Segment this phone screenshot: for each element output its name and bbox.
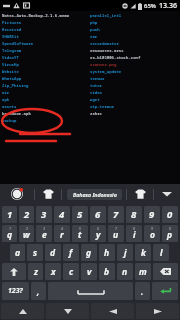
staticText: w xyxy=(23,229,30,241)
button[interactable]: Right xyxy=(136,303,179,319)
button[interactable]: 2 xyxy=(19,206,34,223)
button[interactable]: 7 xyxy=(108,206,124,223)
button[interactable]: h xyxy=(99,244,115,261)
staticText: v xyxy=(87,266,92,278)
button[interactable]: l xyxy=(153,244,169,261)
button[interactable]: b xyxy=(99,263,115,280)
staticText: d xyxy=(50,247,56,259)
staticText: parallel_intl xyxy=(90,13,122,18)
staticText: 13.36 xyxy=(159,1,177,11)
button[interactable]: , xyxy=(31,282,46,300)
other: Backspace xyxy=(152,262,179,281)
button[interactable]: 9 xyxy=(144,206,160,223)
button[interactable]: c xyxy=(63,263,79,280)
button[interactable]: 6 xyxy=(90,206,106,223)
staticText: 9 xyxy=(149,208,155,221)
button[interactable] xyxy=(153,263,178,280)
button[interactable]: 8 xyxy=(126,225,142,242)
button[interactable]: Emoji xyxy=(127,184,153,204)
button[interactable]: x xyxy=(45,263,61,280)
staticText: 1 xyxy=(9,226,11,231)
staticText: 8 xyxy=(131,208,137,221)
button[interactable]: 4 xyxy=(54,225,70,242)
button[interactable]: Left xyxy=(91,303,134,319)
button[interactable]: n xyxy=(117,263,133,280)
staticText: apk xyxy=(2,97,10,102)
staticText: . xyxy=(141,286,144,297)
staticText: q xyxy=(7,229,13,241)
staticText: scanner.png xyxy=(90,62,117,67)
staticText: 0 xyxy=(167,208,173,221)
staticText: SpeedSoftware xyxy=(2,41,34,46)
staticText: y xyxy=(96,229,101,241)
button[interactable]: s xyxy=(27,244,43,261)
staticText: VideoYT xyxy=(2,55,19,60)
button[interactable]: 0 xyxy=(162,206,178,223)
button[interactable]: z xyxy=(28,263,43,280)
staticText: k xyxy=(141,247,146,259)
button[interactable]: Bahasa Indonesia xyxy=(67,189,122,200)
staticText: j xyxy=(124,247,127,259)
button[interactable]: 9 xyxy=(144,225,160,242)
staticText: o xyxy=(150,229,155,241)
staticText: system_update xyxy=(90,69,122,74)
button[interactable]: 1 xyxy=(2,225,17,242)
button[interactable]: . xyxy=(135,282,150,300)
button[interactable]: GO Keyboard menu xyxy=(0,184,34,204)
button[interactable]: a xyxy=(10,244,25,261)
button[interactable]: d xyxy=(45,244,61,261)
button[interactable]: Down xyxy=(46,303,89,319)
button[interactable]: m xyxy=(135,263,151,280)
staticText: 4 xyxy=(61,226,63,231)
button[interactable]: 4 xyxy=(54,206,70,223)
button[interactable]: 7 xyxy=(108,225,124,242)
staticText: 6 xyxy=(97,226,99,231)
button[interactable] xyxy=(152,282,178,300)
staticText: 65% xyxy=(144,2,156,10)
staticText: Pictures xyxy=(2,20,22,25)
staticText: VirusHp xyxy=(2,62,19,67)
button[interactable] xyxy=(2,263,26,280)
staticText: 3 xyxy=(43,226,45,231)
staticText: 5 xyxy=(79,226,81,231)
staticText: 0 xyxy=(169,226,171,231)
staticText: p xyxy=(167,229,173,241)
staticText: a xyxy=(15,247,21,259)
staticText: 2 xyxy=(24,208,30,221)
staticText: 5 xyxy=(77,208,83,221)
button[interactable]: 1 xyxy=(2,206,17,223)
button[interactable]: g xyxy=(81,244,97,261)
button[interactable]: 6 xyxy=(90,225,106,242)
button[interactable] xyxy=(48,282,133,300)
staticText: 7 xyxy=(113,208,119,221)
staticText: x xyxy=(51,266,56,278)
staticText: termux xyxy=(90,76,105,81)
button[interactable]: 5 xyxy=(72,206,88,223)
button[interactable]: Expand suggestions xyxy=(154,184,180,204)
staticText: backdoor.apk xyxy=(2,111,31,116)
button[interactable]: 3 xyxy=(36,225,52,242)
staticText: 7 xyxy=(115,226,117,231)
button[interactable]: 5 xyxy=(72,225,88,242)
button[interactable]: 123? xyxy=(2,282,29,300)
staticText: g xyxy=(86,247,92,259)
button[interactable]: 2 xyxy=(19,225,34,242)
button[interactable]: 8 xyxy=(126,206,142,223)
staticText: 8 xyxy=(133,226,135,231)
button[interactable]: v xyxy=(81,263,97,280)
button[interactable]: k xyxy=(135,244,151,261)
staticText: Zip_Phising xyxy=(2,83,29,88)
button[interactable]: 3 xyxy=(36,206,52,223)
staticText: wget xyxy=(90,97,100,102)
button[interactable]: f xyxy=(63,244,79,261)
staticText: Bahasa Indonesia xyxy=(73,191,117,198)
button[interactable]: Theme xyxy=(35,184,61,204)
button[interactable]: j xyxy=(117,244,133,261)
staticText: video xyxy=(90,90,102,95)
staticText: php xyxy=(90,20,98,25)
staticText: push xyxy=(90,27,100,32)
button[interactable]: Up xyxy=(1,303,44,319)
button[interactable]: 0 xyxy=(162,225,178,242)
staticText: 9 xyxy=(151,226,153,231)
staticText: e xyxy=(42,229,47,241)
